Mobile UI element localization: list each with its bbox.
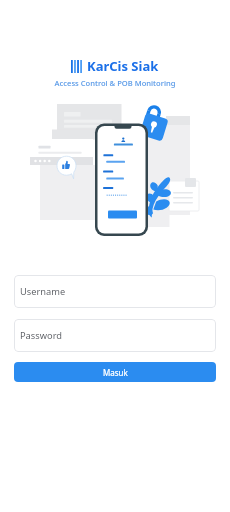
button[interactable]: Username bbox=[14, 275, 216, 308]
staticText: Masuk bbox=[103, 367, 128, 378]
button[interactable]: Masuk bbox=[14, 362, 216, 382]
staticText: Access Control & POB Monitoring bbox=[0, 78, 230, 88]
button[interactable]: Password bbox=[14, 319, 216, 352]
staticText: Username bbox=[20, 285, 66, 298]
staticText: KarCis Siak bbox=[87, 57, 159, 75]
staticText: Password bbox=[20, 329, 63, 342]
